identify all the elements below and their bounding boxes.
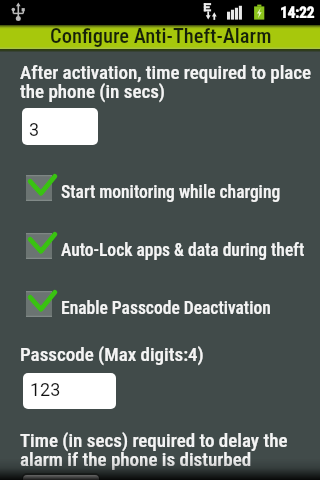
- staticText: After activation, time required to place…: [20, 61, 312, 103]
- staticText: Passcode (Max digits:4): [20, 343, 204, 365]
- staticText: 3: [29, 119, 40, 140]
- button[interactable]: Start monitoring while charging: [0, 173, 320, 203]
- staticText: Configure Anti-Theft-Alarm: [50, 24, 272, 48]
- staticText: Enable Passcode Deactivation: [61, 298, 271, 319]
- button[interactable]: 123: [23, 373, 116, 409]
- staticText: Time (in secs) required to delay the ala…: [20, 429, 288, 471]
- other: Signal strength: [227, 0, 242, 25]
- staticText: Start monitoring while charging: [61, 182, 281, 203]
- staticText: Auto-Lock apps & data during theft: [61, 240, 305, 261]
- button[interactable]: 3: [22, 108, 98, 145]
- other: EDGE data: [199, 0, 219, 25]
- staticText: 14:22: [280, 4, 314, 22]
- other: Battery charging: [253, 0, 265, 25]
- button[interactable]: Auto-Lock apps & data during theft: [0, 231, 320, 261]
- button[interactable]: [22, 473, 100, 480]
- button[interactable]: Configure Anti-Theft-Alarm: [0, 25, 320, 49]
- other: USB connected: [12, 0, 26, 25]
- button[interactable]: Enable Passcode Deactivation: [0, 289, 320, 319]
- staticText: 123: [30, 379, 61, 400]
